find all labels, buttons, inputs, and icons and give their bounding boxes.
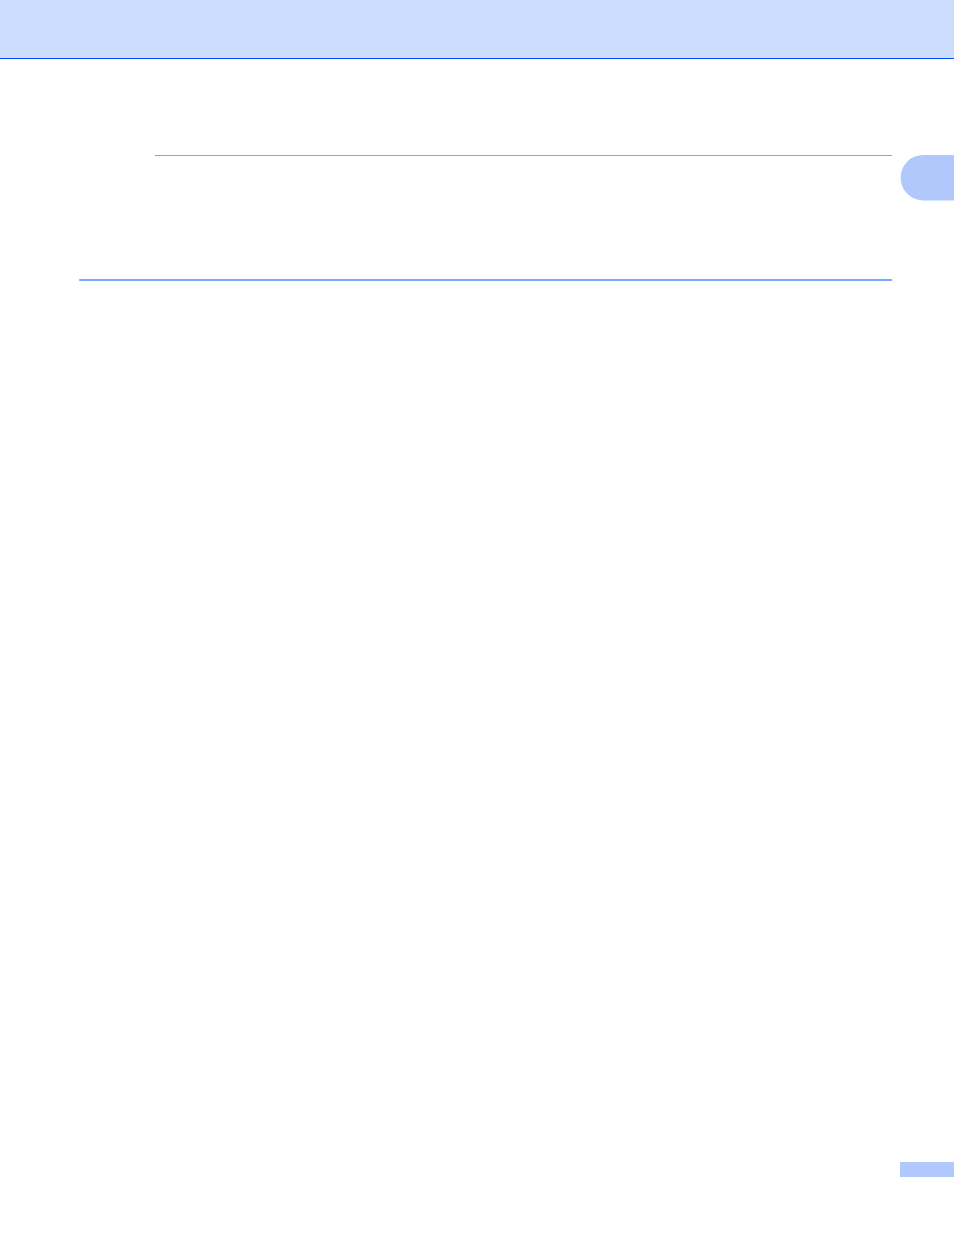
- button[interactable]: Chapter tab: [901, 155, 954, 201]
